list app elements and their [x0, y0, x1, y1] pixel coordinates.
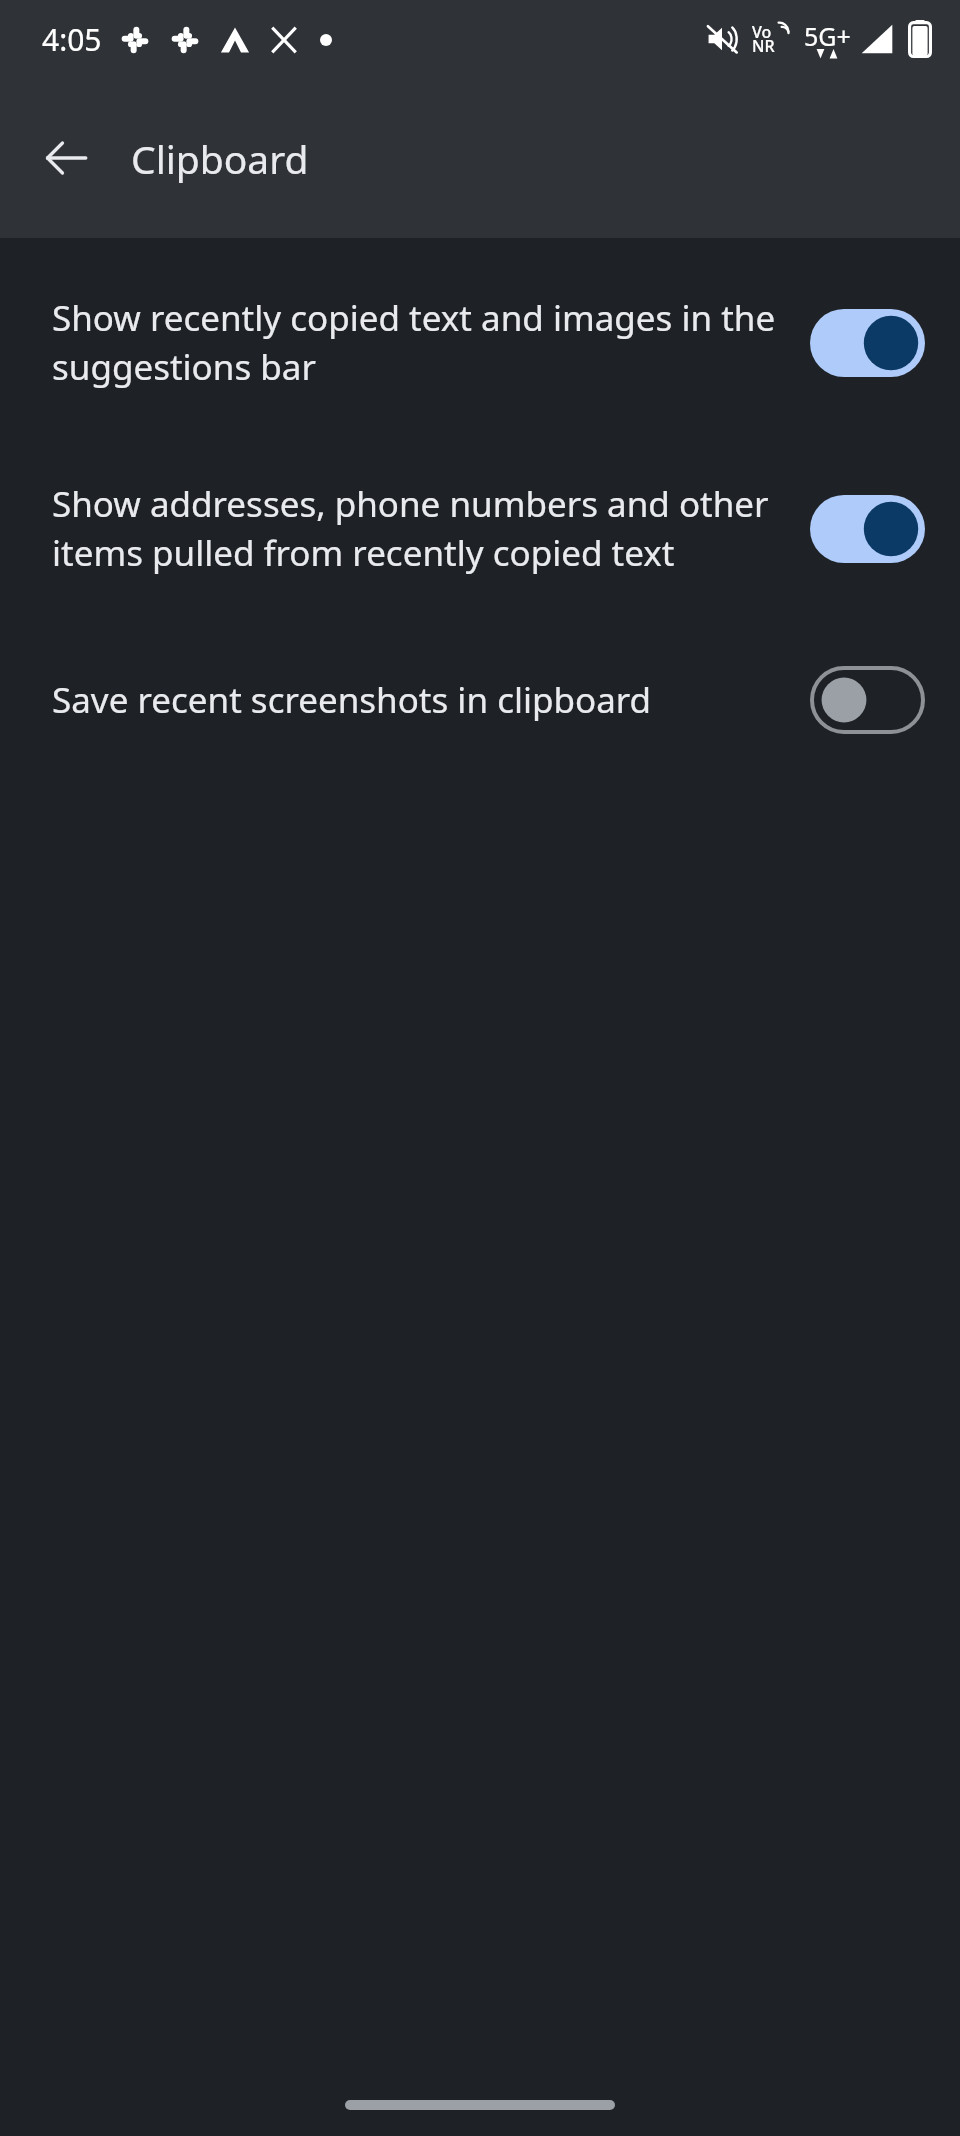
staticText: Clipboard [131, 132, 309, 185]
staticText: 4:05 [42, 19, 102, 60]
button[interactable]: Show recently copied text and images in … [0, 294, 960, 391]
button[interactable]: On [810, 309, 925, 377]
button[interactable]: Back [22, 114, 110, 202]
button[interactable]: Save recent screenshots in clipboard [0, 666, 960, 734]
staticText: Vo [752, 21, 772, 43]
staticText: 5G+ [804, 19, 851, 53]
button[interactable]: On [810, 495, 925, 563]
button[interactable]: Off [810, 666, 925, 734]
button[interactable]: Show addresses, phone numbers and other … [0, 480, 960, 577]
staticText: Show addresses, phone numbers and other … [52, 480, 786, 577]
staticText: Save recent screenshots in clipboard [52, 676, 786, 724]
staticText: NR [752, 35, 775, 57]
staticText: Show recently copied text and images in … [52, 294, 786, 391]
